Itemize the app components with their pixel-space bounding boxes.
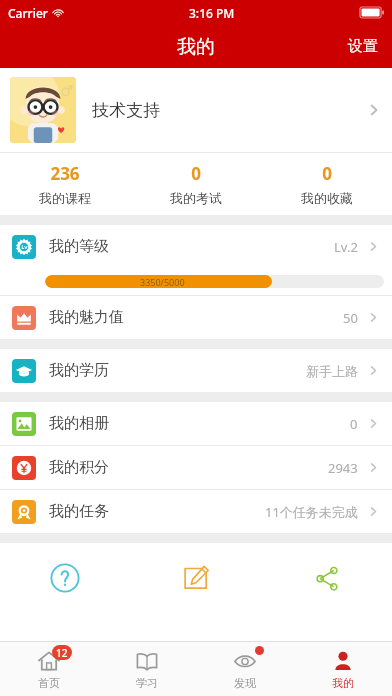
button[interactable]: Feedback <box>130 557 261 599</box>
button[interactable]: 技术支持 <box>0 68 392 152</box>
staticText: 我的任务 <box>49 502 109 521</box>
staticText: 我的积分 <box>49 458 109 477</box>
staticText: 2943 <box>328 459 358 477</box>
staticText: 11个任务未完成 <box>265 503 358 521</box>
staticText: 技术支持 <box>92 100 160 121</box>
staticText: 我的考试 <box>170 190 222 206</box>
staticText: 3350/5000 <box>140 276 185 288</box>
button[interactable]: 我的等级 <box>0 225 392 268</box>
button[interactable]: 我的相册 <box>0 402 392 445</box>
button[interactable]: 我的 <box>294 642 392 696</box>
button[interactable]: Share <box>261 557 392 599</box>
button[interactable]: Help <box>0 557 130 599</box>
staticText: Carrier <box>8 5 48 21</box>
staticText: 发现 <box>234 676 256 690</box>
button[interactable]: 0 <box>261 153 392 215</box>
staticText: 我的收藏 <box>301 190 353 206</box>
button[interactable]: 我的任务 <box>0 490 392 533</box>
button[interactable]: 0 <box>130 153 261 215</box>
button[interactable]: 我的魅力值 <box>0 296 392 339</box>
button[interactable]: 发现 <box>196 642 294 696</box>
button[interactable]: 设置 <box>334 27 392 66</box>
staticText: 我的相册 <box>49 414 109 433</box>
staticText: 设置 <box>348 37 378 56</box>
button[interactable]: 12 <box>0 642 98 696</box>
staticText: 我的 <box>177 35 215 59</box>
staticText: 学习 <box>136 676 158 690</box>
staticText: 50 <box>343 309 358 327</box>
button[interactable]: 我的学历 <box>0 349 392 392</box>
staticText: 我的课程 <box>39 190 91 206</box>
staticText: 我的等级 <box>49 237 109 256</box>
staticText: 0 <box>322 162 332 185</box>
staticText: 0 <box>191 162 201 185</box>
button[interactable]: 我的积分 <box>0 446 392 489</box>
staticText: 首页 <box>38 676 60 690</box>
button[interactable]: 236 <box>0 153 130 215</box>
button[interactable]: 学习 <box>98 642 196 696</box>
staticText: 3:16 PM <box>189 5 235 21</box>
staticText: 我的魅力值 <box>49 308 124 327</box>
staticText: 236 <box>50 162 80 185</box>
staticText: Lv.2 <box>334 238 358 256</box>
staticText: 我的 <box>332 676 354 690</box>
staticText: 新手上路 <box>306 363 358 379</box>
staticText: 12 <box>56 646 68 660</box>
staticText: 0 <box>350 415 358 433</box>
staticText: 我的学历 <box>49 361 109 380</box>
